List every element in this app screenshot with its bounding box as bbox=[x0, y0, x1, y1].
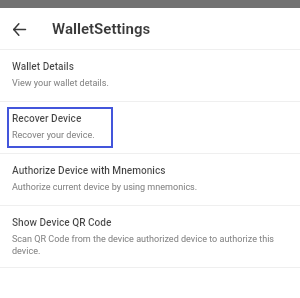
button[interactable]: Back bbox=[0, 10, 38, 48]
staticText: View your wallet details. bbox=[12, 78, 109, 89]
staticText: Recover Device bbox=[12, 113, 82, 125]
button[interactable]: Authorize Device with Mnemonics bbox=[0, 154, 300, 205]
staticText: Show Device QR Code bbox=[12, 217, 112, 229]
staticText: Authorize Device with Mnemonics bbox=[12, 165, 166, 177]
staticText: Wallet Details bbox=[12, 61, 74, 73]
staticText: Scan QR Code from the device authorized … bbox=[12, 234, 274, 256]
staticText: Authorize current device by using mnemon… bbox=[12, 182, 198, 193]
button[interactable]: Wallet Details bbox=[0, 50, 300, 101]
button[interactable]: Show Device QR Code bbox=[0, 206, 300, 267]
button[interactable]: Recover Device bbox=[0, 102, 300, 153]
staticText: Recover your device. bbox=[12, 130, 95, 141]
staticText: WalletSettings bbox=[52, 20, 151, 38]
